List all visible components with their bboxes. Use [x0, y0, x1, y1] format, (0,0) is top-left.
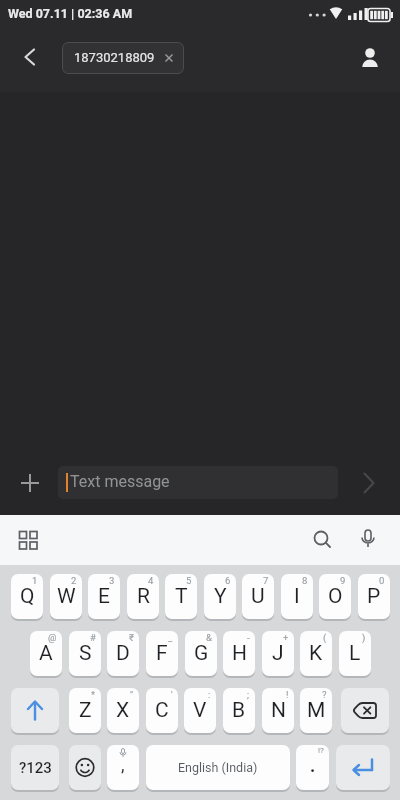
staticText: + — [283, 632, 289, 643]
staticText: @ — [48, 632, 57, 643]
staticText: 7 — [263, 575, 269, 586]
button[interactable]: ?123 — [11, 745, 59, 790]
staticText: Y — [214, 584, 227, 609]
button[interactable]: L — [339, 631, 371, 676]
staticText: 1 — [32, 575, 38, 586]
button[interactable] — [336, 745, 390, 790]
button[interactable]: D — [107, 631, 139, 676]
staticText: L — [349, 641, 361, 666]
button[interactable]: Y — [204, 574, 236, 619]
button[interactable]: S — [69, 631, 101, 676]
button[interactable]: 18730218809 — [62, 42, 184, 74]
staticText: 18730218809 — [74, 50, 155, 65]
button[interactable]: C — [146, 688, 178, 733]
button[interactable]: N — [262, 688, 294, 733]
staticText: !? — [318, 746, 324, 755]
staticText: N — [271, 698, 286, 723]
button[interactable]: J — [262, 631, 294, 676]
staticText: 9 — [340, 575, 346, 586]
button[interactable]: R — [127, 574, 159, 619]
button[interactable]: I — [281, 574, 313, 619]
button[interactable] — [354, 42, 386, 74]
button[interactable]: M — [300, 688, 332, 733]
staticText: 3 — [109, 575, 115, 586]
staticText: C — [155, 698, 169, 723]
staticText: S — [79, 641, 92, 666]
staticText: O — [328, 584, 343, 609]
staticText: R — [137, 584, 150, 609]
staticText: English (India) — [178, 760, 258, 775]
button[interactable]: Z — [69, 688, 101, 733]
staticText: ; — [247, 689, 250, 700]
button[interactable]: , — [107, 745, 139, 790]
staticText: D — [116, 641, 130, 666]
staticText: E — [98, 584, 110, 609]
button[interactable] — [69, 745, 101, 790]
button[interactable]: E — [88, 574, 120, 619]
staticText: 4 — [148, 575, 154, 586]
staticText: K — [309, 641, 323, 666]
staticText: H — [232, 641, 247, 666]
button[interactable]: B — [223, 688, 255, 733]
staticText: 5 — [186, 575, 192, 586]
button[interactable]: X — [107, 688, 139, 733]
button[interactable]: V — [184, 688, 216, 733]
button[interactable]: . — [296, 745, 329, 790]
staticText: W — [57, 584, 76, 609]
button[interactable] — [352, 524, 384, 556]
staticText: - — [247, 632, 250, 643]
staticText: A — [39, 641, 53, 666]
staticText: 2 — [71, 575, 77, 586]
staticText: # — [90, 632, 96, 643]
button[interactable]: K — [300, 631, 332, 676]
button[interactable] — [12, 524, 44, 556]
button[interactable]: W — [50, 574, 82, 619]
staticText: P — [367, 584, 381, 609]
staticText: ? — [322, 689, 327, 700]
staticText: , — [121, 754, 125, 775]
staticText: M — [307, 698, 326, 723]
button[interactable]: A — [30, 631, 62, 676]
staticText: . — [310, 755, 316, 776]
button[interactable]: G — [185, 631, 217, 676]
button[interactable]: P — [358, 574, 390, 619]
staticText: U — [251, 584, 265, 609]
button[interactable]: Q — [11, 574, 43, 619]
button[interactable]: O — [319, 574, 351, 619]
button[interactable] — [341, 688, 389, 733]
button[interactable] — [352, 467, 384, 499]
staticText: J — [272, 641, 284, 666]
staticText: ) — [362, 632, 366, 643]
button[interactable]: U — [242, 574, 274, 619]
staticText: ( — [323, 632, 327, 643]
button[interactable] — [12, 465, 48, 501]
button[interactable]: F — [146, 631, 178, 676]
staticText: Text message — [70, 472, 170, 491]
staticText: _ — [168, 632, 173, 643]
button[interactable] — [306, 524, 338, 556]
staticText: F — [156, 641, 168, 666]
staticText: V — [193, 698, 207, 723]
button[interactable]: Text message — [58, 466, 338, 499]
staticText: ?123 — [19, 759, 52, 777]
staticText: 8 — [302, 575, 308, 586]
button[interactable]: English (India) — [146, 745, 290, 790]
staticText: ! — [286, 689, 289, 700]
staticText: & — [206, 632, 212, 643]
button[interactable] — [11, 688, 59, 733]
staticText: Z — [79, 698, 92, 723]
staticText: X — [116, 698, 130, 723]
staticText: ' — [171, 689, 173, 700]
staticText: Wed 07.11 | 02:36 AM — [8, 6, 133, 21]
staticText: " — [130, 689, 134, 700]
staticText: B — [232, 698, 246, 723]
staticText: : — [208, 689, 211, 700]
staticText: * — [91, 689, 96, 700]
button[interactable] — [12, 42, 44, 74]
staticText: I — [294, 584, 300, 609]
staticText: 0 — [379, 575, 385, 586]
button[interactable]: H — [223, 631, 255, 676]
button[interactable]: T — [165, 574, 197, 619]
staticText: G — [194, 641, 209, 666]
staticText: 6 — [225, 575, 231, 586]
